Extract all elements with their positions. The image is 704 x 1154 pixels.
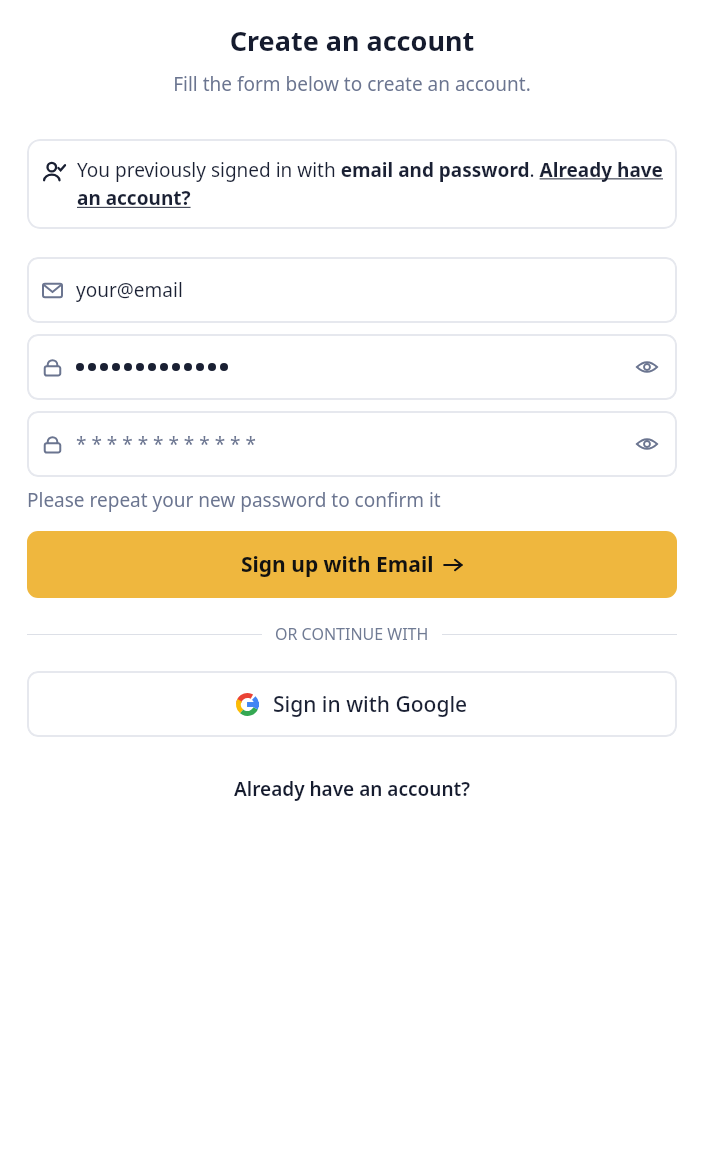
staticText: Create an account [0, 22, 704, 59]
staticText: your@email [76, 277, 183, 303]
button[interactable]: Show password [633, 430, 661, 458]
staticText: * * * * * * * * * * * * [76, 431, 256, 457]
staticText: Sign in with Google [273, 690, 468, 719]
staticText: OR CONTINUE WITH [275, 623, 429, 645]
button[interactable]: Already have an account? [222, 770, 482, 808]
button[interactable]: Show password [633, 353, 661, 381]
button[interactable]: Google [27, 671, 677, 737]
button[interactable]: You previously signed in with email and … [27, 139, 677, 229]
other: Google [236, 693, 259, 716]
staticText: Please repeat your new password to confi… [27, 487, 677, 513]
button[interactable]: your@email [27, 257, 677, 323]
staticText: Already have an account? [234, 776, 470, 802]
button[interactable]: Show password [27, 334, 677, 400]
button[interactable]: Sign up with Email [27, 531, 677, 598]
button[interactable]: * * * * * * * * * * * * [27, 411, 677, 477]
staticText: Fill the form below to create an account… [0, 71, 704, 97]
staticText: You previously signed in with email and … [77, 157, 663, 211]
staticText: Sign up with Email [241, 550, 434, 579]
